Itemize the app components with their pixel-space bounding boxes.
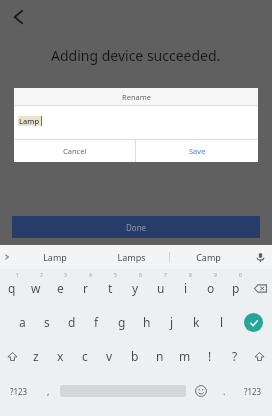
button[interactable]: k xyxy=(184,305,209,339)
staticText: b xyxy=(131,348,139,364)
button[interactable]: ? xyxy=(222,339,247,373)
staticText: w xyxy=(31,280,41,296)
button[interactable]: r xyxy=(73,271,98,305)
button[interactable]: y xyxy=(123,271,148,305)
button[interactable]: ?123 xyxy=(0,373,38,409)
staticText: Cancel xyxy=(63,146,87,156)
button[interactable]: n xyxy=(147,339,172,373)
button[interactable]: t xyxy=(98,271,123,305)
button[interactable]: f xyxy=(84,305,109,339)
button[interactable]: Emoji xyxy=(188,373,214,409)
staticText: c xyxy=(82,348,88,364)
staticText: l xyxy=(220,314,224,330)
staticText: f xyxy=(94,314,99,330)
button[interactable]: Shift xyxy=(247,339,272,373)
button[interactable]: e xyxy=(48,271,73,305)
button[interactable]: j xyxy=(159,305,184,339)
button[interactable]: a xyxy=(10,305,34,339)
button[interactable]: Save xyxy=(136,140,258,162)
staticText: . xyxy=(223,385,226,397)
staticText: h xyxy=(143,314,151,330)
button[interactable]: w xyxy=(24,271,48,305)
staticText: 9 xyxy=(214,272,217,279)
button[interactable]: ?123 xyxy=(234,373,272,409)
staticText: e xyxy=(57,280,64,296)
staticText: , xyxy=(47,385,50,397)
button[interactable]: p xyxy=(223,271,248,305)
button[interactable]: Lamp xyxy=(16,245,93,269)
button[interactable]: o xyxy=(198,271,223,305)
staticText: Adding device succeeded. xyxy=(51,46,221,65)
staticText: v xyxy=(106,348,113,364)
staticText: m xyxy=(179,348,191,364)
button[interactable]: Back xyxy=(4,4,30,30)
button[interactable]: c xyxy=(72,339,97,373)
button[interactable]: l xyxy=(209,305,234,339)
button[interactable]: x xyxy=(48,339,72,373)
button[interactable]: b xyxy=(122,339,147,373)
button[interactable]: q xyxy=(0,271,24,305)
staticText: Lamp xyxy=(19,116,40,126)
staticText: k xyxy=(193,314,200,330)
staticText: Done xyxy=(126,222,147,233)
staticText: i xyxy=(184,280,188,296)
button[interactable]: z xyxy=(24,339,48,373)
staticText: 6 xyxy=(139,272,142,279)
button[interactable]: Enter xyxy=(234,305,272,339)
staticText: Lamps xyxy=(117,251,146,263)
staticText: g xyxy=(118,314,126,330)
staticText: 5 xyxy=(114,272,117,279)
button[interactable]: Voice input xyxy=(248,245,272,269)
button[interactable]: More suggestions xyxy=(0,245,14,269)
staticText: z xyxy=(33,348,39,364)
button[interactable]: h xyxy=(134,305,159,339)
button[interactable]: Lamps xyxy=(93,245,169,269)
button[interactable]: i xyxy=(173,271,198,305)
staticText: a xyxy=(19,314,26,330)
button[interactable]: Cancel xyxy=(14,140,135,162)
button[interactable]: g xyxy=(109,305,134,339)
staticText: ?123 xyxy=(10,386,28,397)
staticText: o xyxy=(207,280,215,296)
button[interactable]: m xyxy=(172,339,197,373)
button[interactable]: d xyxy=(59,305,84,339)
button[interactable]: Backspace xyxy=(248,271,272,305)
staticText: 0 xyxy=(239,272,242,279)
button[interactable]: v xyxy=(97,339,122,373)
staticText: x xyxy=(57,348,64,364)
button[interactable]: Done xyxy=(12,216,260,238)
button[interactable]: Camp xyxy=(170,245,246,269)
staticText: u xyxy=(157,280,165,296)
button[interactable]: Shift xyxy=(0,339,24,373)
staticText: n xyxy=(156,348,164,364)
button[interactable]: . xyxy=(214,373,234,409)
staticText: d xyxy=(68,314,76,330)
button[interactable]: u xyxy=(148,271,173,305)
staticText: ? xyxy=(232,348,238,364)
staticText: Rename xyxy=(122,92,151,102)
staticText: ! xyxy=(208,348,212,364)
button[interactable]: , xyxy=(38,373,58,409)
staticText: q xyxy=(8,280,16,296)
staticText: y xyxy=(132,280,139,296)
staticText: Camp xyxy=(196,251,221,263)
staticText: s xyxy=(44,314,50,330)
button[interactable]: s xyxy=(34,305,59,339)
staticText: ?123 xyxy=(244,386,262,397)
staticText: 2 xyxy=(40,272,43,279)
staticText: 1 xyxy=(16,272,19,279)
staticText: 8 xyxy=(189,272,192,279)
staticText: Save xyxy=(189,146,206,156)
staticText: r xyxy=(83,280,88,296)
staticText: 3 xyxy=(64,272,67,279)
staticText: 4 xyxy=(89,272,92,279)
staticText: t xyxy=(108,280,113,296)
staticText: Lamp xyxy=(43,251,67,263)
staticText: p xyxy=(232,280,240,296)
staticText: 7 xyxy=(164,272,167,279)
staticText: j xyxy=(170,314,174,330)
button[interactable]: ! xyxy=(197,339,222,373)
